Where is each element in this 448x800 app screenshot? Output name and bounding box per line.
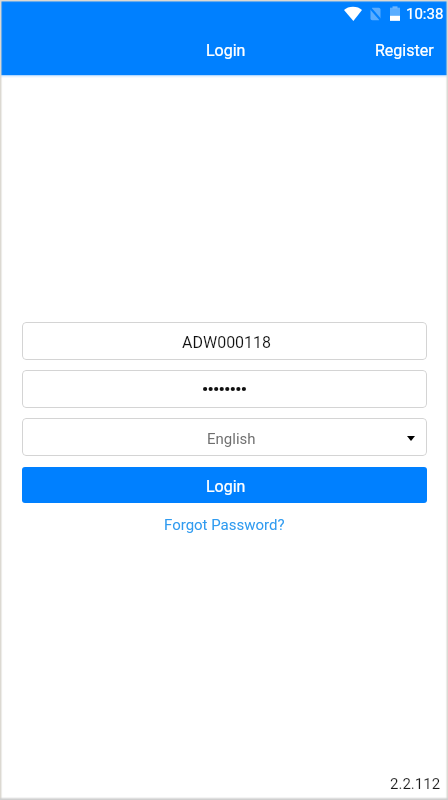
- staticText: ADW000118: [182, 333, 272, 352]
- other: Battery: [390, 6, 400, 22]
- staticText: Forgot Password?: [164, 516, 285, 534]
- button[interactable]: Forgot Password?: [158, 512, 291, 538]
- other: Wi-Fi: [344, 7, 362, 21]
- other: Select language: [407, 436, 415, 441]
- staticText: 10:38: [406, 5, 444, 23]
- button[interactable]: Register: [361, 33, 448, 68]
- other: No signal: [370, 7, 381, 21]
- staticText: Login: [206, 477, 246, 496]
- button[interactable]: ADW000118: [22, 322, 427, 360]
- staticText: English: [207, 430, 256, 448]
- button[interactable]: Login: [196, 35, 256, 66]
- staticText: Register: [375, 41, 434, 60]
- button[interactable]: Login: [22, 467, 427, 503]
- staticText: Login: [206, 41, 246, 60]
- staticText: 2.2.112: [390, 775, 441, 793]
- button[interactable]: English: [22, 418, 427, 456]
- button[interactable]: [22, 370, 427, 408]
